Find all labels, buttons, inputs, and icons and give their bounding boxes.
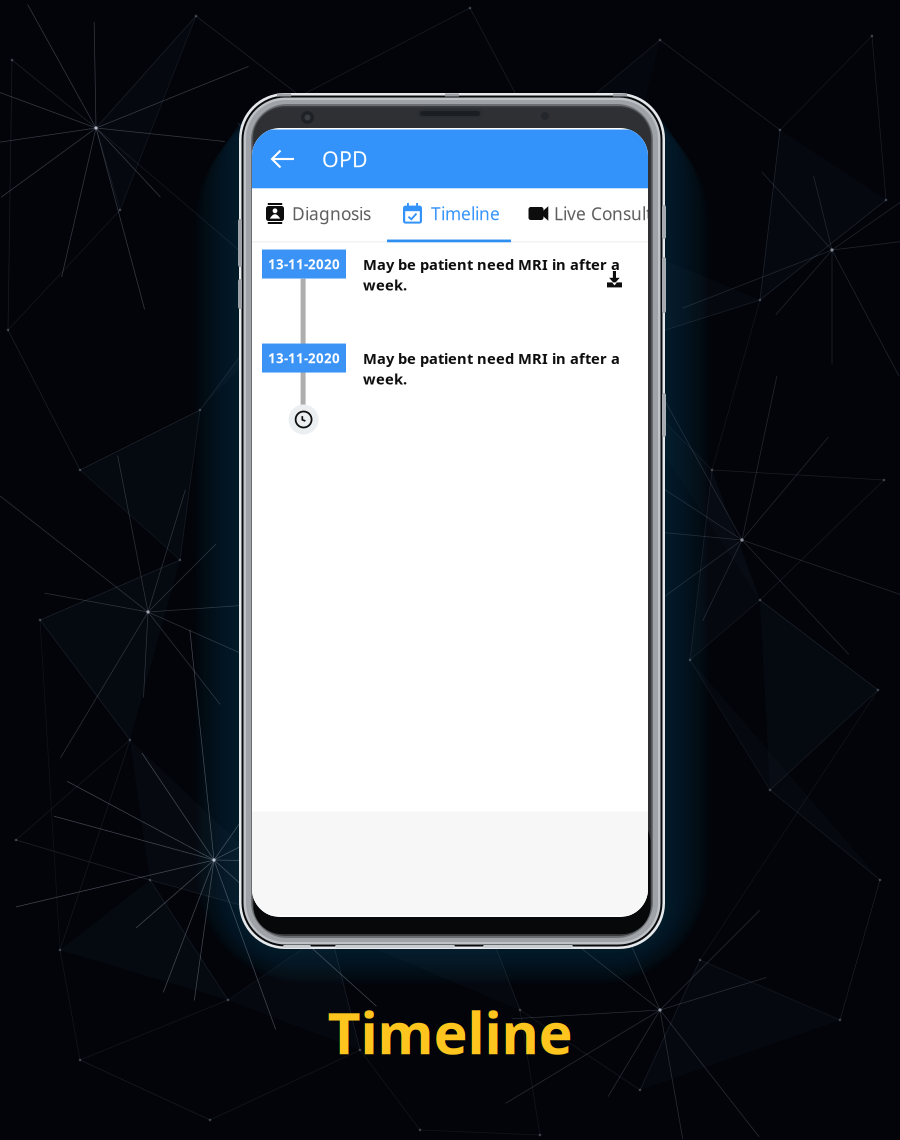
staticText: Timeline xyxy=(431,202,500,225)
staticText: May be patient need MRI in after a week. xyxy=(363,254,620,294)
button[interactable]: 13-11-2020 xyxy=(262,343,638,429)
button[interactable]: Timeline xyxy=(394,188,509,238)
button[interactable]: 13-11-2020 xyxy=(262,249,638,335)
button[interactable]: Download xyxy=(603,262,626,287)
button[interactable]: OPD xyxy=(322,129,368,188)
button[interactable]: Live Consult xyxy=(517,188,661,238)
staticText: 13-11-2020 xyxy=(268,255,340,273)
staticText: May be patient need MRI in after a week. xyxy=(363,348,620,388)
staticText: Diagnosis xyxy=(292,202,371,225)
staticText: OPD xyxy=(322,145,368,173)
staticText: Timeline xyxy=(327,994,572,1070)
button[interactable]: Back xyxy=(255,129,311,188)
staticText: 13-11-2020 xyxy=(268,349,340,367)
staticText: Live Consult xyxy=(554,202,652,225)
button[interactable]: Diagnosis xyxy=(257,188,380,238)
